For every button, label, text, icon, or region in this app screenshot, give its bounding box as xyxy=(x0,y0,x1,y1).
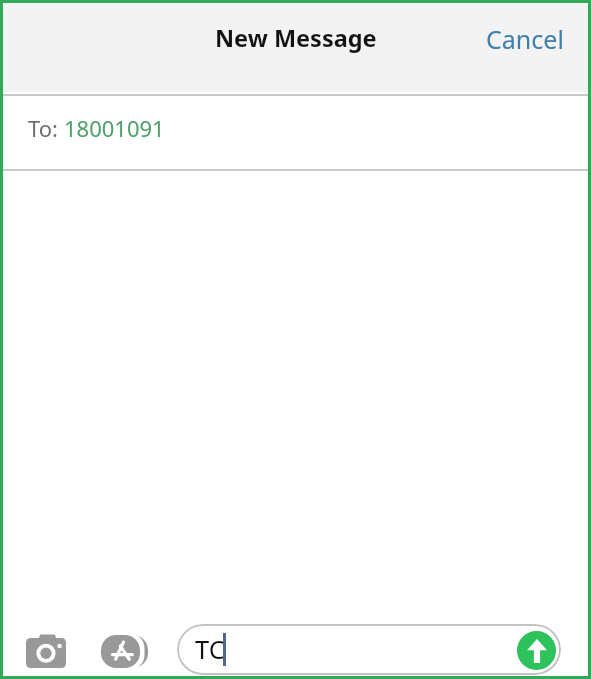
staticText: 18001091 xyxy=(64,113,165,143)
button[interactable]: To: xyxy=(3,94,588,169)
staticText: Cancel xyxy=(486,22,564,56)
button[interactable]: Cancel xyxy=(462,12,588,66)
staticText: To: xyxy=(28,113,64,143)
button[interactable]: Send xyxy=(517,631,556,670)
button[interactable]: TC xyxy=(177,624,561,675)
button[interactable]: Take photo xyxy=(18,625,74,677)
staticText: TC xyxy=(195,632,225,667)
staticText: New Message xyxy=(215,22,377,54)
button[interactable]: iMessage apps xyxy=(93,625,151,677)
